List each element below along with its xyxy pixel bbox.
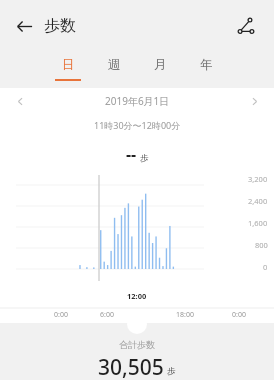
button[interactable]: 月 bbox=[137, 52, 183, 88]
staticText: 3,200 bbox=[248, 174, 268, 184]
staticText: 30,505 bbox=[98, 353, 164, 380]
staticText: 12:00 bbox=[127, 291, 147, 301]
staticText: 800 bbox=[255, 240, 268, 250]
staticText: 週 bbox=[108, 57, 121, 73]
staticText: 合計歩数 bbox=[119, 339, 155, 350]
staticText: 6:00 bbox=[100, 310, 114, 320]
staticText: 歩数 bbox=[44, 16, 76, 36]
button[interactable]: 週 bbox=[91, 52, 137, 88]
staticText: 0:00 bbox=[232, 310, 246, 320]
staticText: 0:00 bbox=[54, 310, 68, 320]
staticText: 0 bbox=[263, 262, 268, 272]
button[interactable]: Next day bbox=[242, 89, 266, 113]
staticText: 2,400 bbox=[248, 196, 268, 206]
staticText: 年 bbox=[200, 57, 213, 73]
staticText: 1,600 bbox=[248, 218, 268, 228]
staticText: 日 bbox=[62, 57, 75, 73]
staticText: 11時30分〜12時00分 bbox=[94, 119, 181, 131]
staticText: 18:00 bbox=[176, 310, 194, 320]
staticText: 歩 bbox=[167, 366, 176, 377]
staticText: 歩 bbox=[140, 153, 149, 164]
button[interactable]: Share bbox=[226, 6, 266, 46]
button[interactable]: Previous day bbox=[8, 89, 32, 113]
button[interactable]: 年 bbox=[183, 52, 229, 88]
button[interactable]: Time scrubber bbox=[127, 314, 147, 334]
button[interactable]: 日 bbox=[45, 52, 91, 88]
staticText: 2019年6月1日 bbox=[105, 94, 170, 108]
staticText: -- bbox=[126, 143, 137, 165]
staticText: 月 bbox=[154, 57, 167, 73]
button[interactable]: Back bbox=[4, 6, 44, 46]
